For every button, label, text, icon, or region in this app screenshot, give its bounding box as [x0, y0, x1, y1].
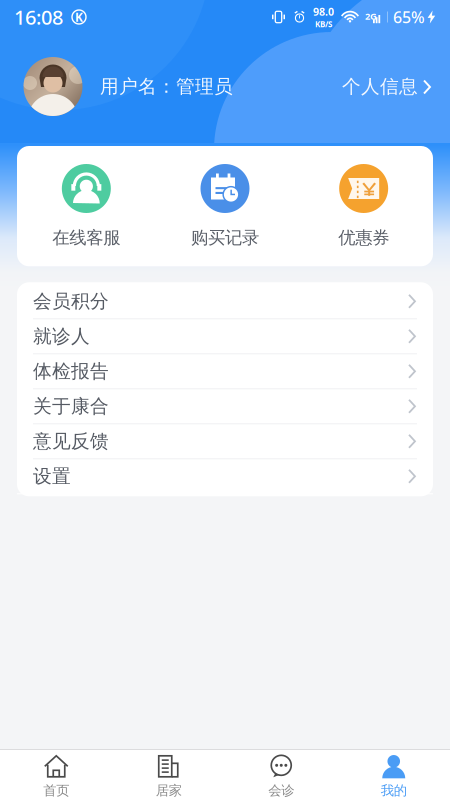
staticText: 在线客服 [52, 227, 120, 248]
staticText: 居家 [156, 782, 182, 799]
button[interactable]: 就诊人 [17, 319, 433, 354]
staticText: K [75, 9, 83, 25]
staticText: 关于康合 [33, 395, 109, 418]
staticText: 购买记录 [191, 227, 259, 248]
staticText: 意见反馈 [33, 430, 109, 453]
staticText: 65% [393, 6, 425, 28]
staticText: 优惠券 [338, 227, 389, 248]
staticText: 会员积分 [33, 290, 109, 313]
button[interactable]: 体检报告 [17, 354, 433, 389]
button[interactable]: 优惠券 [294, 164, 433, 248]
button[interactable]: 会员积分 [17, 284, 433, 319]
staticText: 98.0 [313, 5, 334, 19]
button[interactable]: 首页 [0, 747, 112, 800]
staticText: 我的 [381, 782, 407, 799]
button[interactable]: 关于康合 [17, 389, 433, 424]
staticText: 16:08 [14, 4, 63, 30]
button[interactable]: 居家 [112, 747, 225, 800]
button[interactable]: 会诊 [225, 747, 337, 800]
button[interactable]: 购买记录 [156, 164, 294, 248]
staticText: KB/S [315, 19, 332, 29]
button[interactable]: 意见反馈 [17, 424, 433, 459]
staticText: 2G [365, 10, 377, 22]
button[interactable]: 个人信息 [342, 67, 432, 106]
staticText: 设置 [33, 465, 71, 488]
staticText: 会诊 [268, 782, 294, 799]
staticText: 个人信息 [342, 75, 418, 98]
staticText: 用户名：管理员 [100, 75, 233, 98]
staticText: 首页 [43, 782, 69, 799]
button[interactable]: 设置 [17, 459, 433, 494]
staticText: 体检报告 [33, 360, 109, 383]
button[interactable]: 在线客服 [17, 164, 156, 248]
button[interactable]: 我的 [337, 747, 450, 800]
staticText: 就诊人 [33, 325, 90, 348]
